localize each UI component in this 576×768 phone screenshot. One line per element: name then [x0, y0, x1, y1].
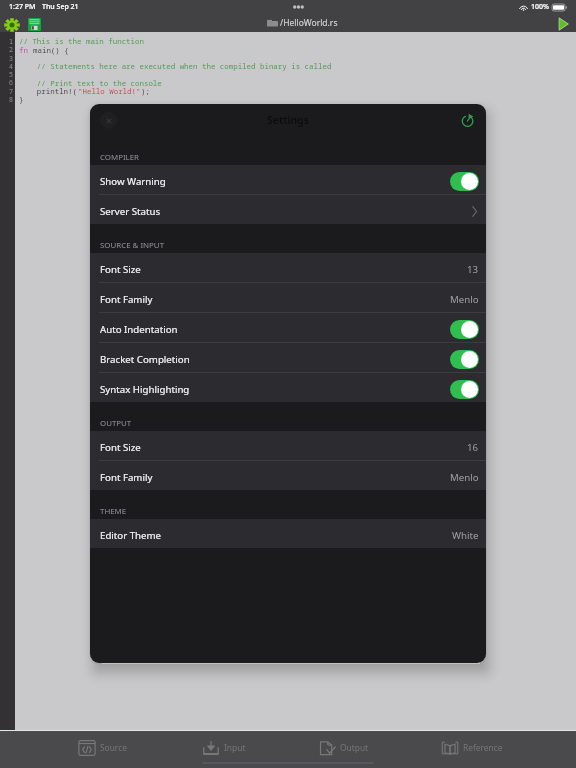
- staticText: Output: [340, 742, 369, 753]
- button[interactable]: Run: [554, 15, 572, 33]
- staticText: 1:27 PM: [9, 2, 36, 12]
- staticText: }: [19, 94, 24, 104]
- staticText: 8: [9, 95, 13, 104]
- staticText: Editor Theme: [100, 529, 162, 542]
- button[interactable]: Close: [100, 112, 117, 129]
- button[interactable]: Reference: [441, 737, 503, 758]
- staticText: 3: [9, 54, 13, 63]
- staticText: Thu Sep 21: [42, 2, 79, 12]
- staticText: White: [452, 529, 479, 542]
- staticText: Auto Indentation: [100, 323, 178, 336]
- staticText: // Print text to the console: [19, 78, 162, 88]
- button[interactable]: Save: [26, 16, 43, 33]
- staticText: // This is the main function: [19, 36, 144, 46]
- staticText: "Hello World!": [78, 86, 141, 96]
- staticText: 2: [9, 45, 13, 54]
- staticText: Input: [224, 742, 246, 753]
- staticText: 100%: [531, 2, 549, 12]
- staticText: 5: [9, 70, 13, 79]
- button[interactable]: Show Warning: [90, 165, 486, 194]
- staticText: 4: [9, 62, 13, 71]
- staticText: main() {: [33, 45, 69, 55]
- staticText: THEME: [100, 506, 127, 517]
- staticText: );: [141, 86, 150, 96]
- button[interactable]: Server Status: [90, 195, 486, 224]
- button[interactable]: Output: [318, 737, 369, 758]
- button[interactable]: Input: [202, 737, 246, 758]
- button[interactable]: Refresh: [457, 109, 477, 129]
- button[interactable]: Font Family: [90, 283, 486, 312]
- staticText: Server Status: [100, 205, 161, 218]
- staticText: Menlo: [450, 293, 479, 306]
- button[interactable]: Settings: [3, 16, 21, 34]
- staticText: 16: [467, 441, 479, 454]
- staticText: 7: [9, 87, 13, 96]
- staticText: Bracket Completion: [100, 353, 190, 366]
- button[interactable]: Bracket Completion: [90, 343, 486, 372]
- staticText: Settings: [267, 113, 309, 127]
- staticText: SOURCE & INPUT: [100, 240, 165, 251]
- staticText: COMPILER: [100, 152, 140, 163]
- staticText: Syntax Highlighting: [100, 383, 190, 396]
- button[interactable]: Font Size: [90, 253, 486, 282]
- button[interactable]: Syntax Highlighting: [90, 373, 486, 402]
- staticText: Show Warning: [100, 175, 166, 188]
- staticText: Reference: [463, 742, 503, 753]
- button[interactable]: Editor Theme: [90, 519, 486, 548]
- staticText: Menlo: [450, 471, 479, 484]
- staticText: 13: [467, 263, 479, 276]
- button[interactable]: Font Family: [90, 461, 486, 490]
- staticText: /HelloWorld.rs: [280, 17, 338, 29]
- staticText: Source: [100, 742, 127, 753]
- staticText: 1: [9, 37, 13, 46]
- staticText: 6: [9, 78, 13, 87]
- staticText: println!(: [19, 86, 78, 96]
- staticText: Font Size: [100, 263, 141, 276]
- button[interactable]: Source: [78, 737, 127, 758]
- staticText: OUTPUT: [100, 418, 132, 429]
- staticText: Font Size: [100, 441, 141, 454]
- staticText: fn: [19, 45, 33, 55]
- button[interactable]: Auto Indentation: [90, 313, 486, 342]
- staticText: Font Family: [100, 471, 153, 484]
- staticText: Font Family: [100, 293, 153, 306]
- staticText: // Statements here are executed when the…: [19, 61, 332, 71]
- button[interactable]: Font Size: [90, 431, 486, 460]
